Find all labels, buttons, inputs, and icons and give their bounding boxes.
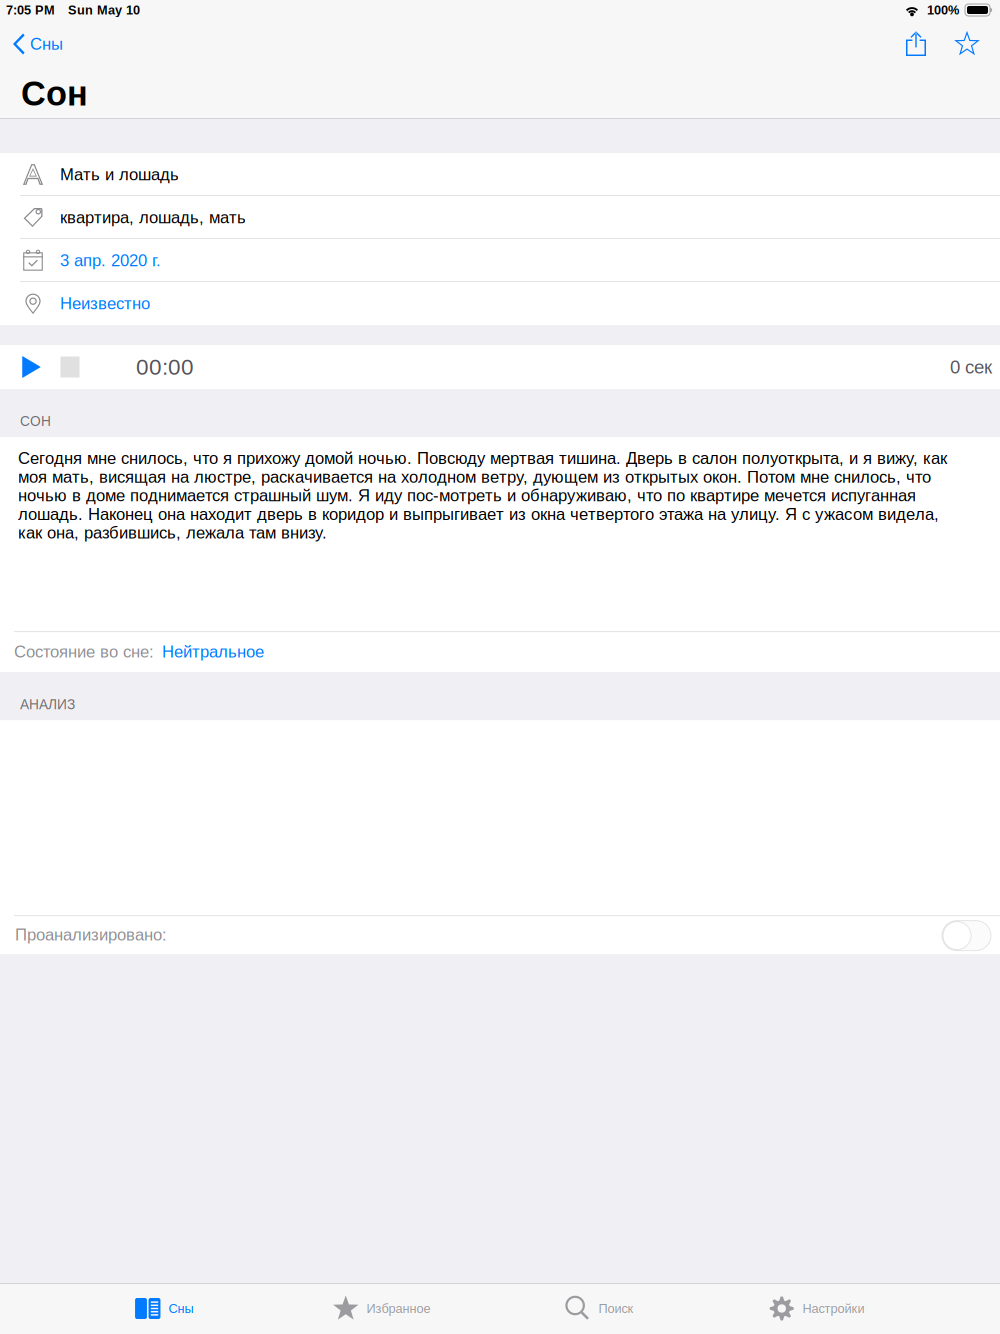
staticText: Состояние во сне: bbox=[14, 642, 154, 661]
button[interactable]: Поиск bbox=[490, 1283, 707, 1333]
button[interactable]: Проанализировано bbox=[942, 920, 991, 950]
staticText: Сны bbox=[168, 1301, 193, 1316]
button[interactable]: Сны bbox=[0, 20, 73, 68]
button[interactable]: Настройки bbox=[707, 1283, 925, 1333]
staticText: СОН bbox=[20, 414, 51, 429]
button[interactable]: Сны bbox=[55, 1283, 272, 1333]
staticText: Настройки bbox=[803, 1301, 865, 1316]
staticText: Поиск bbox=[599, 1301, 634, 1316]
staticText: Избранное bbox=[367, 1301, 431, 1316]
staticText: 0 сек bbox=[950, 357, 992, 377]
staticText: Неизвестно bbox=[60, 294, 150, 313]
staticText: АНАЛИЗ bbox=[20, 697, 75, 712]
staticText: Нейтральное bbox=[162, 642, 264, 661]
staticText: 100% bbox=[927, 3, 959, 17]
staticText: квартира, лошадь, мать bbox=[60, 208, 246, 227]
button[interactable]: Избранное bbox=[272, 1283, 490, 1333]
button[interactable]: Неизвестно bbox=[0, 282, 1000, 325]
staticText: Sun May 10 bbox=[68, 3, 140, 17]
button[interactable]: Состояние во сне: bbox=[0, 631, 1000, 672]
staticText: 00:00 bbox=[136, 354, 194, 380]
button[interactable]: Мать и лошадь bbox=[0, 153, 1000, 196]
staticText: Сны bbox=[30, 35, 63, 53]
staticText: 7:05 PM bbox=[6, 3, 55, 17]
staticText: Сон bbox=[21, 74, 88, 113]
button[interactable]: Favorite bbox=[944, 20, 990, 68]
staticText: Мать и лошадь bbox=[60, 165, 179, 184]
staticText: 3 апр. 2020 г. bbox=[60, 251, 161, 270]
button[interactable]: квартира, лошадь, мать bbox=[0, 196, 1000, 239]
button[interactable]: 3 апр. 2020 г. bbox=[0, 239, 1000, 282]
button[interactable]: Stop bbox=[52, 345, 88, 389]
button[interactable]: Play bbox=[11, 345, 52, 389]
staticText: Проанализировано: bbox=[15, 925, 167, 944]
button[interactable]: Share bbox=[886, 20, 944, 68]
staticText: Сегодня мне снилось, что я прихожу домой… bbox=[18, 449, 947, 542]
